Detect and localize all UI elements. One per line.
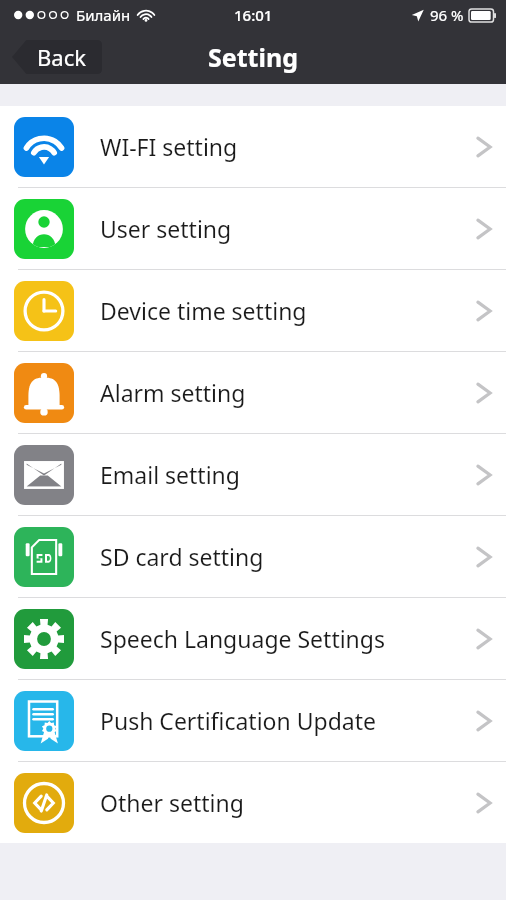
staticText: User setting [100,213,476,244]
staticText: Other setting [100,787,476,818]
staticText: Speech Language Settings [100,623,476,654]
button[interactable]: User setting [0,188,506,270]
staticText: 16:01 [234,5,273,25]
staticText: WI-FI setting [100,131,476,162]
button[interactable]: Other setting [0,762,506,843]
staticText: Push Certification Update [100,705,476,736]
staticText: Back [37,42,86,72]
staticText: Email setting [100,459,476,490]
button[interactable]: Alarm setting [0,352,506,434]
button[interactable]: WI-FI setting [0,106,506,188]
staticText: Билайн [76,5,131,25]
staticText: Alarm setting [100,377,476,408]
staticText: SD card setting [100,541,476,572]
button[interactable]: SD card setting [0,516,506,598]
staticText: 96 % [430,5,464,25]
button[interactable]: Email setting [0,434,506,516]
button[interactable]: Speech Language Settings [0,598,506,680]
staticText: Device time setting [100,295,476,326]
button[interactable]: Push Certification Update [0,680,506,762]
staticText: Setting [208,40,298,74]
button[interactable]: Device time setting [0,270,506,352]
button[interactable]: Back [12,40,102,74]
